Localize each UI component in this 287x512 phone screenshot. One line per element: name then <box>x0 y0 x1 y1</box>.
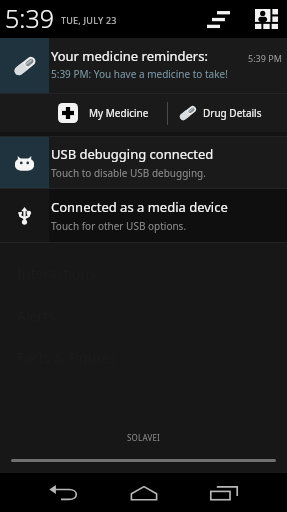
staticText: My Medicine <box>89 106 149 120</box>
staticText: SOLAVEI <box>127 432 160 443</box>
staticText: Touch for other USB options. <box>51 219 187 233</box>
staticText: USB debugging connected <box>51 145 214 163</box>
button[interactable]: My Medicine <box>49 94 167 132</box>
button[interactable]: USB debugging connected <box>0 137 287 188</box>
staticText: Your medicine reminders: <box>51 47 208 65</box>
button[interactable]: Back <box>24 473 104 512</box>
staticText: 5:39 PM: You have a medicine to take! <box>51 67 228 81</box>
staticText: Touch to disable USB debugging. <box>51 166 206 180</box>
staticText: 5:39 PM <box>248 52 282 64</box>
staticText: Connected as a media device <box>51 198 228 216</box>
button[interactable]: Drug Details <box>168 94 287 132</box>
button[interactable]: Home <box>104 473 184 512</box>
button[interactable]: Recent apps <box>184 473 264 512</box>
staticText: TUE, JULY 23 <box>61 14 117 26</box>
button[interactable]: Your medicine reminders: <box>0 38 287 93</box>
staticText: 5:39 <box>5 1 54 35</box>
staticText: Drug Details <box>203 106 262 120</box>
button[interactable]: Connected as a media device <box>0 189 287 242</box>
